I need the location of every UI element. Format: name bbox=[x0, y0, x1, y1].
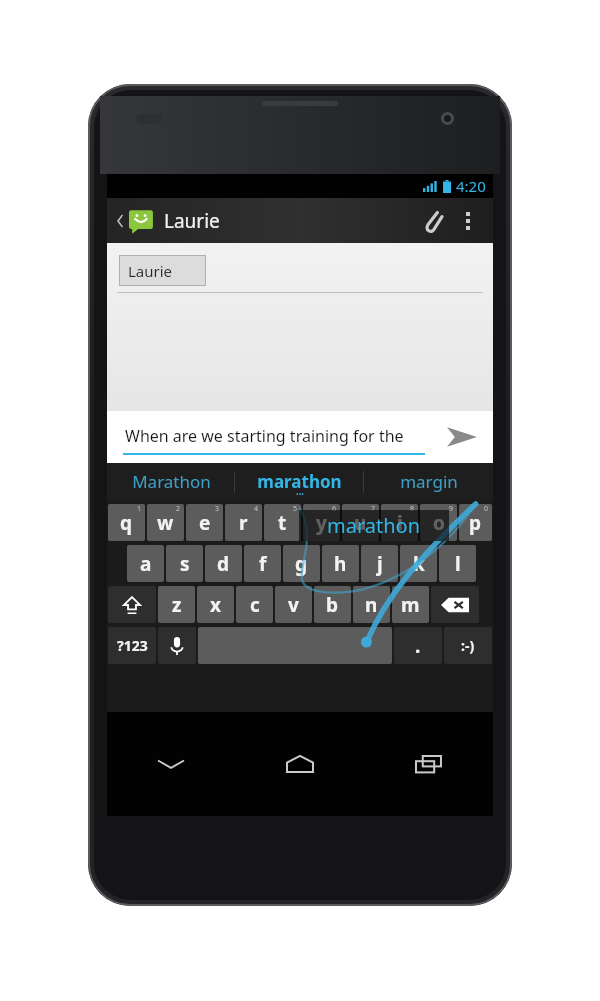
staticText: a bbox=[140, 551, 152, 577]
staticText: h bbox=[334, 551, 347, 577]
staticText: . bbox=[415, 633, 421, 659]
button[interactable]: c bbox=[236, 586, 273, 623]
staticText: q bbox=[120, 510, 133, 536]
staticText: :-) bbox=[461, 636, 475, 655]
button[interactable]: l bbox=[439, 545, 476, 582]
staticText: Laurie bbox=[128, 261, 173, 281]
staticText: m bbox=[401, 592, 420, 618]
staticText: 8 bbox=[410, 504, 415, 514]
staticText: z bbox=[172, 592, 182, 618]
staticText: n bbox=[365, 592, 378, 618]
button[interactable]: o bbox=[420, 504, 457, 541]
staticText: marathon bbox=[257, 470, 342, 493]
button[interactable]: u bbox=[342, 504, 379, 541]
staticText: t bbox=[278, 510, 287, 536]
staticText: margin bbox=[400, 470, 458, 493]
button[interactable]: marathon bbox=[235, 463, 364, 500]
staticText: 2 bbox=[176, 504, 181, 514]
staticText: o bbox=[433, 510, 445, 536]
button[interactable]: Home bbox=[235, 712, 364, 816]
staticText: d bbox=[217, 551, 230, 577]
button[interactable]: w bbox=[147, 504, 184, 541]
staticText: v bbox=[288, 592, 299, 618]
button[interactable]: d bbox=[205, 545, 242, 582]
button[interactable]: ?123 bbox=[108, 627, 156, 664]
button[interactable]: :-) bbox=[444, 627, 492, 664]
button[interactable] bbox=[158, 627, 196, 664]
button[interactable]: margin bbox=[364, 463, 493, 500]
staticText: y bbox=[316, 510, 327, 536]
button[interactable]: f bbox=[244, 545, 281, 582]
staticText: 1 bbox=[137, 504, 142, 514]
button[interactable]: . bbox=[394, 627, 442, 664]
button[interactable]: r bbox=[225, 504, 262, 541]
staticText: Laurie bbox=[164, 208, 220, 234]
button[interactable]: Marathon bbox=[107, 463, 235, 500]
staticText: k bbox=[413, 551, 425, 577]
button[interactable]: p bbox=[459, 504, 492, 541]
staticText: When are we starting training for the bbox=[125, 425, 404, 447]
staticText: 0 bbox=[484, 504, 489, 514]
button[interactable]: Send bbox=[431, 411, 493, 463]
button[interactable]: g bbox=[283, 545, 320, 582]
button[interactable]: h bbox=[322, 545, 359, 582]
staticText: c bbox=[250, 592, 260, 618]
button[interactable]: t bbox=[264, 504, 301, 541]
staticText: 6 bbox=[332, 504, 337, 514]
staticText: 3 bbox=[215, 504, 220, 514]
staticText: marathon bbox=[327, 512, 421, 539]
staticText: e bbox=[199, 510, 211, 536]
button[interactable]: b bbox=[314, 586, 351, 623]
staticText: 9 bbox=[449, 504, 454, 514]
staticText: ••• bbox=[296, 490, 304, 500]
staticText: s bbox=[180, 551, 190, 577]
button[interactable] bbox=[108, 586, 156, 623]
button[interactable]: y bbox=[303, 504, 340, 541]
button[interactable]: n bbox=[353, 586, 390, 623]
staticText: 4 bbox=[254, 504, 259, 514]
staticText: p bbox=[469, 510, 482, 536]
button[interactable]: Hide keyboard bbox=[107, 712, 235, 816]
staticText: j bbox=[377, 551, 383, 577]
button[interactable]: e bbox=[186, 504, 223, 541]
button[interactable]: q bbox=[108, 504, 145, 541]
button[interactable]: i bbox=[381, 504, 418, 541]
staticText: 7 bbox=[371, 504, 376, 514]
button[interactable]: m bbox=[392, 586, 429, 623]
button[interactable]: z bbox=[158, 586, 195, 623]
staticText: 4:20 bbox=[456, 176, 486, 196]
staticText: l bbox=[455, 551, 461, 577]
staticText: f bbox=[259, 551, 267, 577]
staticText: b bbox=[326, 592, 339, 618]
staticText: u bbox=[354, 510, 367, 536]
staticText: 5 bbox=[293, 504, 298, 514]
button[interactable] bbox=[431, 586, 479, 623]
button[interactable]: v bbox=[275, 586, 312, 623]
button[interactable]: Laurie bbox=[113, 208, 222, 234]
staticText: i bbox=[397, 510, 403, 536]
staticText: Marathon bbox=[132, 470, 211, 493]
button[interactable]: Recent apps bbox=[364, 712, 493, 816]
button[interactable]: a bbox=[127, 545, 164, 582]
staticText: w bbox=[157, 510, 174, 536]
button[interactable]: k bbox=[400, 545, 437, 582]
button[interactable] bbox=[198, 627, 392, 664]
button[interactable]: More options bbox=[453, 198, 483, 243]
staticText: x bbox=[210, 592, 221, 618]
staticText: ?123 bbox=[117, 636, 148, 655]
button[interactable]: Laurie bbox=[119, 255, 206, 286]
staticText: g bbox=[295, 551, 308, 577]
button[interactable]: j bbox=[361, 545, 398, 582]
button[interactable]: Attach bbox=[413, 198, 453, 243]
button[interactable]: x bbox=[197, 586, 234, 623]
staticText: r bbox=[239, 510, 248, 536]
button[interactable]: s bbox=[166, 545, 203, 582]
